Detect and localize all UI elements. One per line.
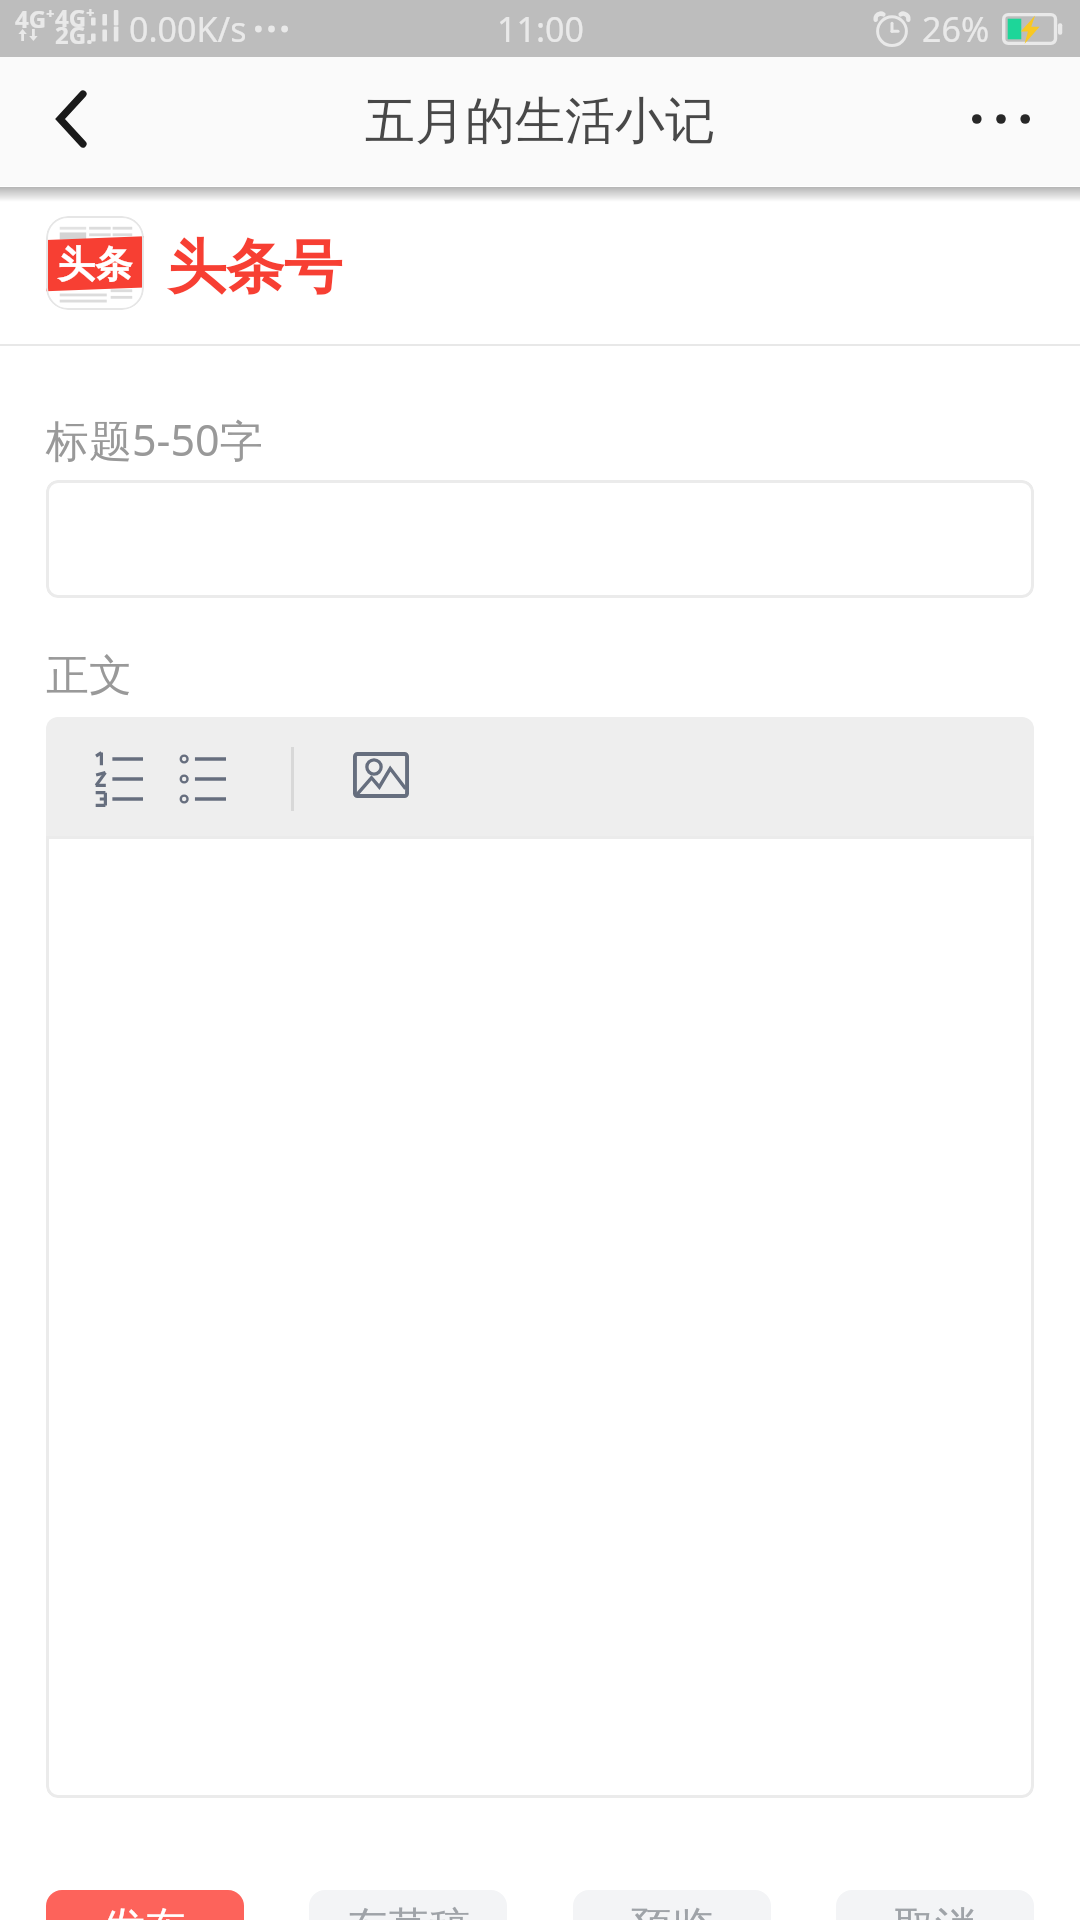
- staticText: 0.00K/s: [129, 6, 247, 52]
- staticText: 标题5-50字: [46, 410, 263, 469]
- staticText: 4G⁺: [55, 1, 95, 34]
- staticText: 预览: [631, 1902, 713, 1920]
- staticText: 正文: [46, 649, 132, 703]
- staticText: 2G.: [55, 18, 93, 51]
- button[interactable]: Title input field: [46, 480, 1034, 598]
- button[interactable]: 取消: [836, 1890, 1034, 1920]
- staticText: 26%: [922, 6, 990, 52]
- button[interactable]: Numbered list: [82, 745, 154, 813]
- button[interactable]: 存草稿: [309, 1890, 507, 1920]
- button[interactable]: 预览: [573, 1890, 771, 1920]
- button[interactable]: Back: [0, 57, 150, 186]
- button[interactable]: Bulleted list: [168, 745, 238, 813]
- staticText: 五月的生活小记: [365, 90, 715, 153]
- button[interactable]: 发布: [46, 1890, 244, 1920]
- button[interactable]: Insert image: [343, 741, 419, 809]
- staticText: 存草稿: [347, 1902, 470, 1920]
- staticText: 发布: [104, 1902, 186, 1920]
- staticText: 11:00: [497, 6, 584, 52]
- staticText: 4G⁺: [15, 2, 55, 35]
- staticText: 头条号: [168, 231, 342, 304]
- button[interactable]: More options: [930, 57, 1080, 186]
- staticText: 头条: [58, 241, 132, 288]
- button[interactable]: Toutiao account: [46, 216, 144, 310]
- staticText: 取消: [894, 1902, 976, 1920]
